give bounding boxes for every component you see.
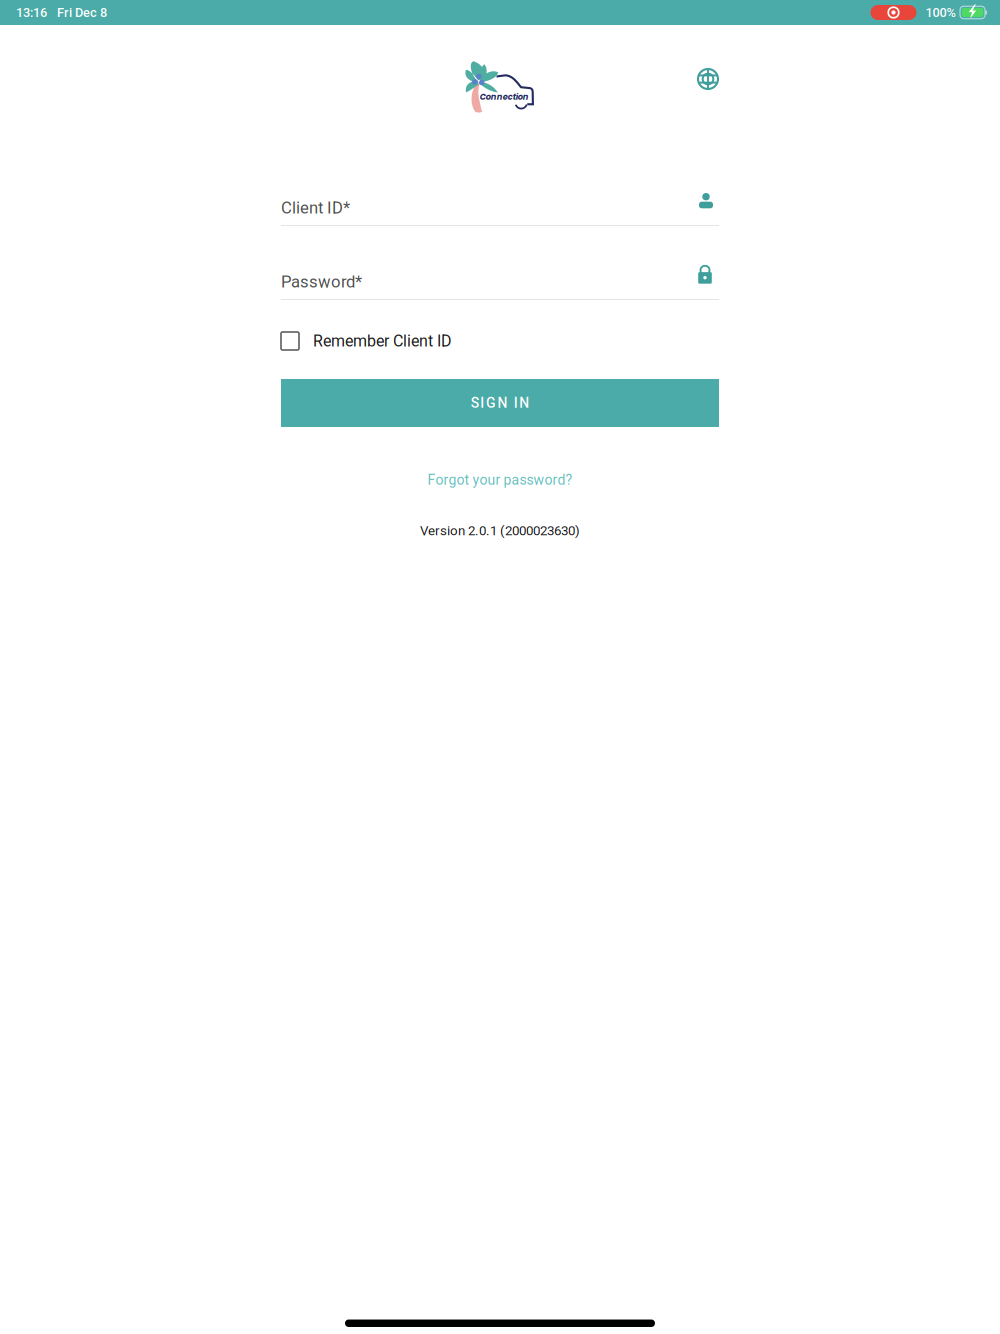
- staticText: Connection: [480, 91, 529, 103]
- staticText: Remember Client ID: [313, 332, 452, 350]
- staticText: Fri Dec 8: [57, 5, 107, 20]
- staticText: Version 2.0.1 (2000023630): [420, 523, 580, 539]
- button[interactable]: Change language: [687, 58, 729, 100]
- button[interactable]: Forgot your password?: [427, 469, 572, 491]
- staticText: 13:16: [16, 5, 47, 20]
- staticText: Client ID*: [281, 198, 350, 217]
- staticText: SIGN IN: [471, 395, 529, 411]
- button[interactable]: Remember Client ID: [281, 332, 719, 350]
- staticText: Forgot your password?: [427, 472, 572, 488]
- button[interactable]: SIGN IN: [281, 379, 719, 427]
- staticText: 100%: [925, 5, 955, 20]
- staticText: Password*: [281, 272, 362, 291]
